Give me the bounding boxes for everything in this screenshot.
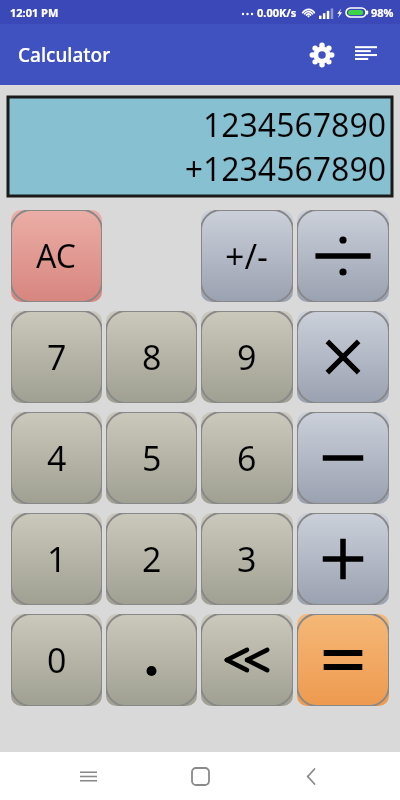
button[interactable]: Home (176, 752, 224, 800)
button[interactable]: Plus (297, 513, 389, 605)
button[interactable]: 9 (201, 311, 293, 403)
staticText: 6 (237, 435, 257, 481)
button[interactable]: Equals (297, 614, 389, 706)
button[interactable]: Back (288, 752, 336, 800)
staticText: +1234567890 (184, 147, 386, 191)
button[interactable]: AC (11, 210, 102, 302)
button[interactable]: 2 (106, 513, 197, 605)
staticText: 8 (142, 334, 162, 380)
button[interactable]: 5 (106, 412, 197, 504)
staticText: 0.00K/s (257, 5, 297, 20)
button[interactable]: +/- (201, 210, 293, 302)
button[interactable]: 7 (11, 311, 102, 403)
button[interactable]: Recents (64, 752, 112, 800)
button[interactable]: Backspace (201, 614, 293, 706)
button[interactable]: 3 (201, 513, 293, 605)
staticText: 7 (47, 334, 67, 380)
button[interactable]: Settings (300, 33, 344, 77)
staticText: 12:01 PM (10, 5, 59, 20)
button[interactable]: Menu (344, 33, 388, 77)
button[interactable]: 0 (11, 614, 102, 706)
staticText: 3 (237, 536, 257, 582)
staticText: 9 (237, 334, 257, 380)
staticText: 2 (142, 536, 162, 582)
button[interactable]: Multiply (297, 311, 389, 403)
button[interactable]: 6 (201, 412, 293, 504)
button[interactable]: Minus (297, 412, 389, 504)
staticText: 5 (142, 435, 162, 481)
button[interactable]: 4 (11, 412, 102, 504)
staticText: 98% (371, 5, 394, 20)
staticText: AC (36, 234, 77, 278)
button[interactable]: Decimal point (106, 614, 197, 706)
staticText: 0 (47, 637, 67, 683)
button[interactable]: Divide (297, 210, 389, 302)
staticText: 1 (47, 536, 67, 582)
button[interactable]: 1 (11, 513, 102, 605)
staticText: Calculator (18, 42, 111, 68)
button[interactable]: 8 (106, 311, 197, 403)
staticText: +/- (225, 233, 269, 279)
staticText: 1234567890 (202, 103, 386, 147)
staticText: 4 (47, 435, 67, 481)
